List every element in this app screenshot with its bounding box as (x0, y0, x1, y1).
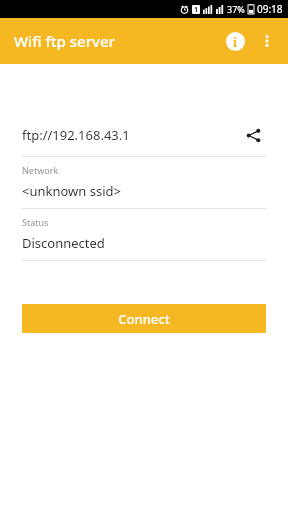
button[interactable]: ftp://192.168.43.1 (22, 122, 266, 148)
button[interactable]: Share (240, 122, 266, 148)
staticText: 09:18 (257, 2, 283, 16)
staticText: Connect (118, 310, 170, 328)
staticText: i (233, 34, 238, 50)
button[interactable]: Connect (22, 304, 266, 333)
staticText: Status (22, 216, 49, 228)
staticText: 1 (194, 5, 199, 14)
staticText: Network (22, 164, 59, 176)
staticText: Disconnected (22, 234, 105, 252)
staticText: 37% (227, 3, 245, 15)
staticText: ftp://192.168.43.1 (22, 126, 240, 144)
button[interactable]: Status (0, 209, 288, 260)
button[interactable]: Info (220, 26, 250, 56)
staticText: <unknown ssid> (22, 182, 121, 200)
button[interactable]: More options (252, 26, 282, 56)
button[interactable]: Network (0, 157, 288, 208)
staticText: Wifi ftp server (14, 31, 115, 51)
